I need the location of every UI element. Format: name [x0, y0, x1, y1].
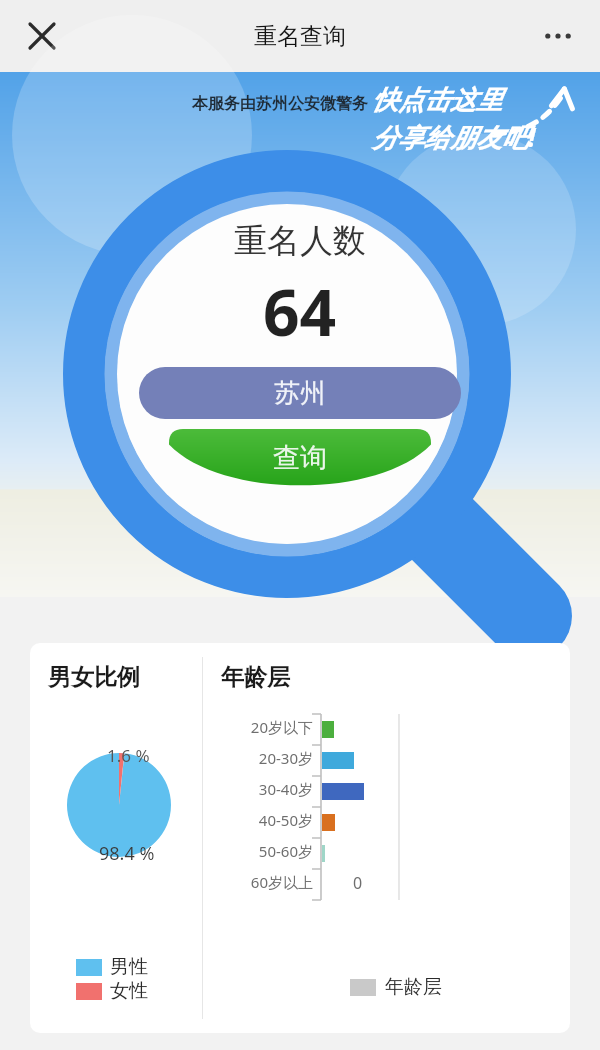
button[interactable]: 男女比例: [30, 643, 570, 1033]
staticText: 苏州: [274, 377, 326, 410]
button[interactable]: 查询: [169, 429, 431, 499]
staticText: 重名查询: [254, 22, 346, 51]
button[interactable]: Close: [14, 8, 70, 64]
staticText: 40-50岁: [258, 810, 313, 830]
staticText: 重名人数: [234, 220, 366, 262]
staticText: 30-40岁: [258, 779, 313, 799]
staticText: 20-30岁: [258, 748, 313, 768]
staticText: 本服务由苏州公安微警务: [192, 94, 368, 114]
staticText: 快点击这里: [372, 84, 502, 117]
staticText: 男性: [110, 955, 148, 979]
staticText: 0: [353, 872, 363, 894]
button[interactable]: Share to friends: [362, 78, 592, 168]
staticText: 1.6 %: [107, 744, 150, 767]
staticText: 年龄层: [221, 663, 290, 692]
staticText: 女性: [110, 979, 148, 1003]
staticText: 50-60岁: [258, 841, 313, 861]
staticText: 年龄层: [385, 975, 442, 999]
staticText: 分享给朋友吧!: [372, 119, 536, 155]
staticText: 查询: [273, 441, 327, 475]
button[interactable]: 苏州: [139, 367, 461, 419]
button[interactable]: More options: [530, 8, 586, 64]
staticText: 20岁以下: [250, 717, 313, 737]
staticText: 98.4 %: [99, 841, 155, 866]
staticText: 60岁以上: [250, 872, 313, 892]
staticText: 64: [263, 268, 337, 355]
staticText: 男女比例: [48, 663, 140, 692]
